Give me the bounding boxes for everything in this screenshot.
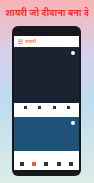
button[interactable]: action1: [36, 104, 42, 110]
button[interactable]: action3: [65, 104, 71, 110]
button[interactable]: nav4: [67, 160, 75, 168]
button[interactable]: nav0: [18, 160, 26, 168]
button[interactable]: action2: [51, 104, 57, 110]
button[interactable]: nav2: [42, 160, 50, 168]
button[interactable]: nav3: [55, 160, 63, 168]
button[interactable]: nav1: [30, 160, 38, 168]
staticText: शायरी जो दीवाना बना दे: [5, 6, 89, 18]
staticText: शायरी: [25, 38, 36, 45]
button[interactable]: action0: [22, 104, 28, 110]
